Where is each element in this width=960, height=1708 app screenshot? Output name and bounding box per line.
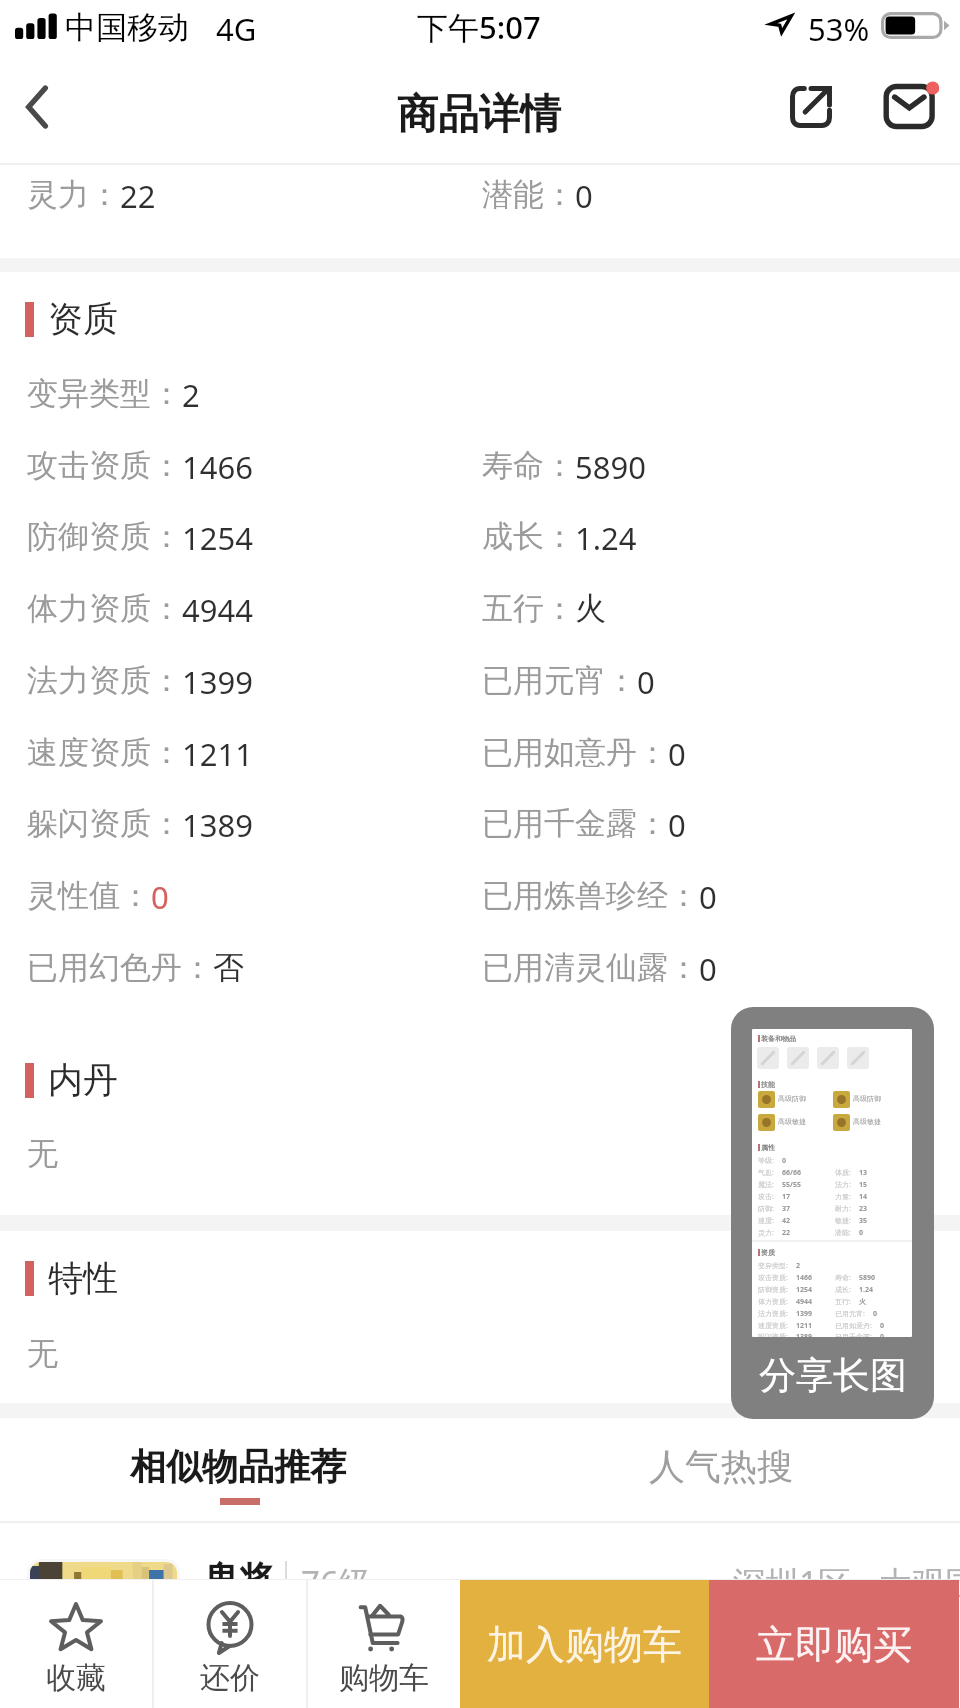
staticText: 0 <box>668 804 686 846</box>
staticText: 0 <box>637 661 655 703</box>
staticText: 体力资质: <box>758 1297 788 1307</box>
staticText: 法力资质： <box>27 661 182 700</box>
staticText: 灵力: <box>758 1228 774 1238</box>
staticText: 4G <box>216 8 257 50</box>
staticText: 资质 <box>761 1248 775 1257</box>
staticText: 22 <box>120 175 156 217</box>
staticText: 无 <box>27 1134 58 1173</box>
staticText: 23 <box>859 1204 868 1214</box>
staticText: 1254 <box>182 517 253 559</box>
staticText: 76级 <box>301 1560 372 1605</box>
staticText: 速度资质： <box>27 733 182 772</box>
staticText: 内丹 <box>48 1058 118 1102</box>
button[interactable]: 加入购物车 <box>460 1580 709 1708</box>
staticText: 防御资质: <box>758 1285 788 1295</box>
staticText: 0 <box>880 1332 885 1337</box>
staticText: 已用如意丹: <box>835 1321 872 1331</box>
staticText: 2 <box>182 374 200 416</box>
staticText: 1211 <box>796 1321 813 1331</box>
staticText: 成长: <box>835 1285 851 1295</box>
staticText: 人气热搜 <box>649 1444 793 1489</box>
staticText: 收藏 <box>46 1659 106 1697</box>
button[interactable]: 收藏 <box>0 1580 152 1708</box>
staticText: 42 <box>782 1216 791 1226</box>
staticText: 0 <box>668 733 686 775</box>
staticText: 1211 <box>182 733 253 775</box>
staticText: 1389 <box>796 1332 813 1337</box>
staticText: 0 <box>782 1156 787 1166</box>
staticText: 躲闪资质： <box>27 804 182 843</box>
staticText: 4944 <box>796 1297 813 1307</box>
button[interactable]: 鬼将 <box>0 1540 960 1650</box>
staticText: 相似物品推荐 <box>130 1444 346 1489</box>
staticText: 立即购买 <box>756 1620 912 1669</box>
staticText: 高级敏捷 <box>853 1117 881 1126</box>
staticText: 潜能: <box>835 1228 851 1238</box>
staticText: 潜能： <box>482 175 575 214</box>
staticText: 装备和物品 <box>761 1034 796 1043</box>
staticText: 魔法: <box>758 1180 774 1190</box>
staticText: 0 <box>699 876 717 918</box>
staticText: 还价 <box>200 1659 260 1697</box>
button[interactable]: 还价 <box>154 1580 306 1708</box>
staticText: 已用炼兽珍经： <box>482 876 699 915</box>
staticText: 1.24 <box>859 1285 873 1295</box>
staticText: 体质: <box>835 1168 851 1178</box>
button[interactable]: Back <box>0 66 90 158</box>
staticText: 等级: <box>758 1156 774 1166</box>
button[interactable]: 人气热搜 <box>630 1430 812 1502</box>
staticText: 攻击: <box>758 1192 774 1202</box>
staticText: 0 <box>699 948 717 990</box>
staticText: 已用元宵: <box>835 1309 865 1319</box>
staticText: 1389 <box>182 804 253 846</box>
staticText: 分享长图 <box>759 1352 907 1399</box>
staticText: 高级防御 <box>778 1094 806 1103</box>
staticText: 法力: <box>835 1180 851 1190</box>
staticText: 属性 <box>761 1143 775 1152</box>
staticText: 2 <box>796 1261 801 1271</box>
staticText: 火 <box>575 589 606 628</box>
staticText: 5890 <box>575 446 646 488</box>
staticText: 0 <box>859 1228 864 1238</box>
staticText: 耐力: <box>835 1204 851 1214</box>
staticText: 22 <box>782 1228 791 1238</box>
staticText: 14 <box>859 1192 868 1202</box>
staticText: 已用千金露： <box>482 804 668 843</box>
staticText: 速度: <box>758 1216 774 1226</box>
staticText: 加入购物车 <box>487 1620 682 1669</box>
staticText: 66/66 <box>782 1168 801 1178</box>
staticText: 速度资质: <box>758 1321 788 1331</box>
staticText: 寿命： <box>482 446 575 485</box>
staticText: 4944 <box>182 589 253 631</box>
button[interactable]: 相似物品推荐 <box>108 1430 368 1512</box>
staticText: 购物车 <box>339 1659 429 1697</box>
staticText: 已用清灵仙露： <box>482 948 699 987</box>
staticText: 中国移动 <box>65 8 189 47</box>
staticText: 高级防御 <box>853 1094 881 1103</box>
staticText: 深圳1区 - 大观园 <box>733 1560 960 1605</box>
staticText: 特性 <box>48 1256 118 1300</box>
staticText: 五行: <box>835 1297 851 1307</box>
staticText: 法力资质: <box>758 1309 788 1319</box>
staticText: 0 <box>151 876 169 918</box>
staticText: 变异类型: <box>758 1261 788 1271</box>
button[interactable]: Messages <box>872 60 952 156</box>
staticText: 灵性值： <box>27 876 151 915</box>
staticText: 防御资质： <box>27 517 182 556</box>
staticText: 技能 <box>761 1080 775 1089</box>
staticText: 五行： <box>482 589 575 628</box>
staticText: 15 <box>859 1180 868 1190</box>
staticText: 敏捷: <box>835 1216 851 1226</box>
staticText: 1466 <box>796 1273 813 1283</box>
staticText: 气血: <box>758 1168 774 1178</box>
button[interactable]: Share <box>770 65 852 155</box>
staticText: 0 <box>880 1321 885 1331</box>
staticText: 1399 <box>796 1309 813 1319</box>
staticText: 已用千金露: <box>835 1332 872 1337</box>
staticText: 55/55 <box>782 1180 801 1190</box>
button[interactable]: 分享长图 <box>731 1007 934 1419</box>
staticText: 已用如意丹： <box>482 733 668 772</box>
staticText: 已用幻色丹： <box>27 948 213 987</box>
button[interactable]: 购物车 <box>308 1580 460 1708</box>
button[interactable]: 立即购买 <box>709 1580 959 1708</box>
